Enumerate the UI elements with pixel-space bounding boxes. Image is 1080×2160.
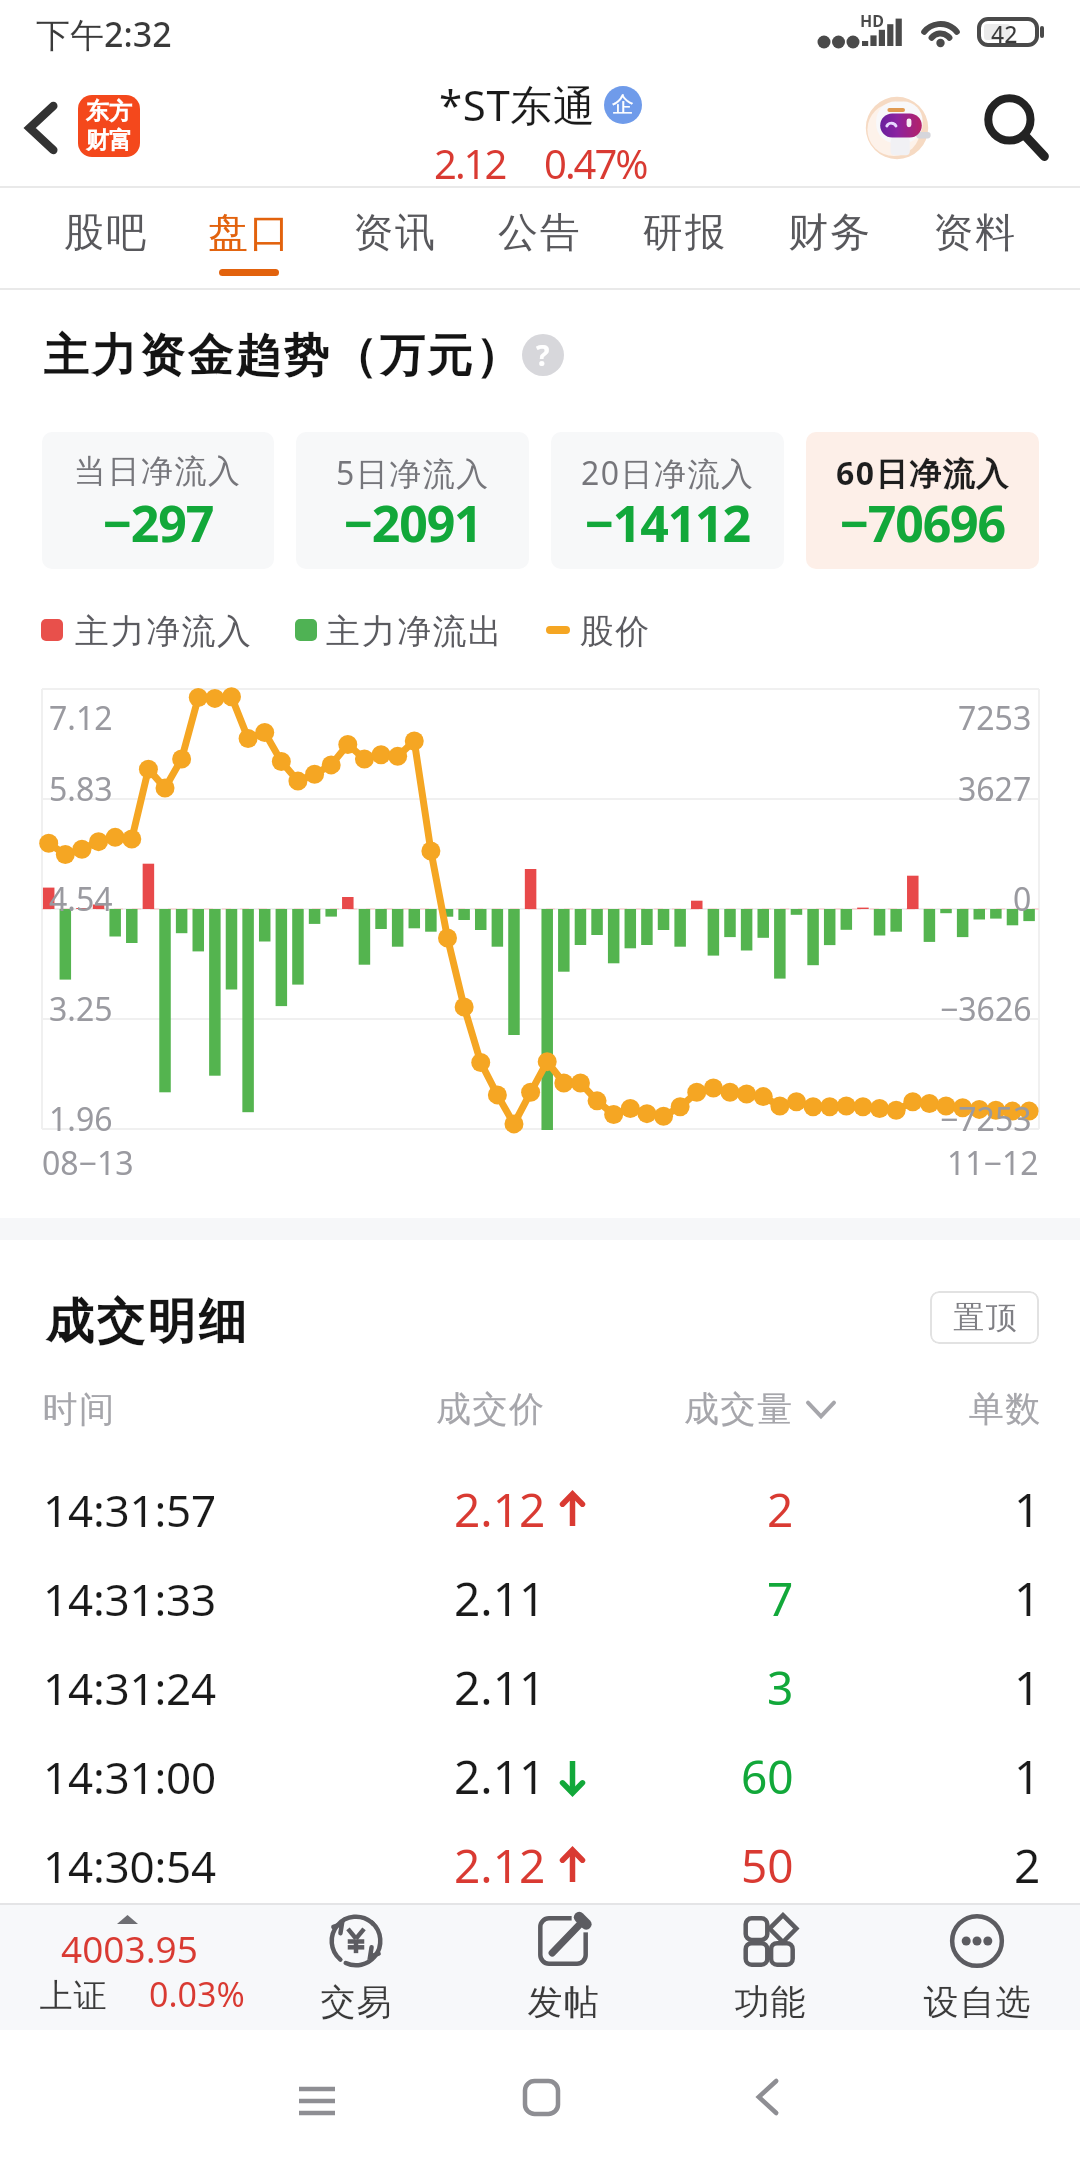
button[interactable]: 资料: [901, 188, 1046, 290]
staticText: 主力净流入: [75, 610, 253, 650]
staticText: 7.12: [49, 696, 113, 740]
staticText: 2.12: [434, 136, 506, 190]
staticText: 3627: [958, 767, 1032, 811]
staticText: 7253: [958, 696, 1032, 740]
button[interactable]: 盘口: [177, 188, 321, 290]
staticText: 14:31:00: [43, 1747, 216, 1807]
button[interactable]: Back: [0, 76, 82, 180]
staticText: 1: [1014, 1745, 1041, 1808]
staticText: 成交明细: [44, 1292, 248, 1352]
staticText: 单数: [968, 1387, 1041, 1431]
staticText: 4.54: [49, 877, 113, 921]
staticText: 盘口: [207, 207, 291, 257]
button[interactable]: 发帖: [459, 1905, 666, 2032]
staticText: 股吧: [63, 207, 147, 257]
staticText: 研报: [642, 207, 726, 257]
staticText: 20日净流入: [581, 451, 755, 495]
staticText: 公告: [497, 207, 581, 257]
button[interactable]: 研报: [611, 188, 756, 290]
staticText: 发帖: [527, 1980, 599, 2024]
staticText: 14:31:33: [43, 1569, 216, 1629]
staticText: 50: [741, 1834, 794, 1897]
button[interactable]: Search: [968, 80, 1064, 176]
staticText: −70696: [840, 489, 1005, 557]
button[interactable]: 14:31:24: [0, 1643, 1080, 1732]
staticText: −3626: [940, 987, 1032, 1031]
button[interactable]: 资讯: [321, 188, 466, 290]
staticText: 3.25: [49, 987, 113, 1031]
staticText: 企: [612, 91, 634, 119]
staticText: −297: [103, 489, 214, 557]
staticText: 1: [1014, 1656, 1041, 1719]
staticText: 设自选: [923, 1980, 1031, 2024]
button[interactable]: 交易: [252, 1905, 459, 2032]
button[interactable]: 4003.95: [0, 1905, 252, 2032]
button[interactable]: 14:31:00: [0, 1732, 1080, 1821]
staticText: 2: [767, 1478, 794, 1541]
staticText: 1: [1014, 1478, 1041, 1541]
staticText: ?: [536, 336, 550, 374]
staticText: 财务: [787, 207, 871, 257]
staticText: 14:31:57: [43, 1480, 216, 1540]
button[interactable]: Recent apps: [274, 2058, 360, 2144]
staticText: 14:30:54: [43, 1836, 216, 1896]
staticText: HD: [860, 10, 884, 32]
staticText: 主力净流出: [326, 610, 504, 650]
staticText: 2.12: [454, 1834, 546, 1897]
staticText: 0.47%: [544, 136, 647, 190]
staticText: 1.96: [49, 1097, 113, 1141]
staticText: 成交价: [436, 1387, 546, 1431]
staticText: 资讯: [352, 207, 436, 257]
staticText: 资料: [932, 207, 1016, 257]
button[interactable]: 14:30:54: [0, 1821, 1080, 1910]
staticText: 60: [741, 1745, 794, 1808]
staticText: 14:31:24: [43, 1658, 216, 1718]
button[interactable]: 60日净流入: [806, 432, 1039, 569]
staticText: 功能: [734, 1980, 806, 2024]
staticText: 42: [991, 18, 1018, 49]
button[interactable]: Back: [724, 2054, 810, 2140]
button[interactable]: 14:31:57: [0, 1465, 1080, 1554]
button[interactable]: 5日净流入: [296, 432, 529, 569]
staticText: *ST东通: [439, 76, 596, 133]
button[interactable]: AI assistant: [857, 88, 937, 168]
button[interactable]: 功能: [666, 1905, 873, 2032]
staticText: 2.12: [454, 1478, 546, 1541]
staticText: 11−12: [947, 1141, 1039, 1185]
staticText: 2.11: [454, 1745, 546, 1808]
button[interactable]: East Money home: [78, 95, 140, 157]
staticText: 4003.95: [61, 1923, 198, 1973]
staticText: −7253: [940, 1097, 1032, 1141]
staticText: 5日净流入: [336, 451, 490, 495]
staticText: 2: [1014, 1834, 1041, 1897]
staticText: 2.11: [454, 1567, 546, 1630]
button[interactable]: 置顶: [930, 1291, 1039, 1344]
button[interactable]: 财务: [756, 188, 901, 290]
staticText: −2091: [344, 489, 482, 557]
staticText: 3: [767, 1656, 794, 1719]
staticText: −14112: [585, 489, 750, 557]
button[interactable]: 20日净流入: [551, 432, 784, 569]
button[interactable]: Home: [498, 2054, 584, 2140]
button[interactable]: 14:31:33: [0, 1554, 1080, 1643]
staticText: 上证: [39, 1975, 107, 2017]
staticText: 5.83: [49, 767, 113, 811]
button[interactable]: 股吧: [33, 188, 177, 290]
staticText: 0: [1013, 877, 1032, 921]
staticText: 交易: [320, 1980, 392, 2024]
staticText: 下午2:32: [36, 11, 172, 57]
staticText: 0.03%: [149, 1971, 245, 2017]
staticText: 财富: [86, 126, 132, 155]
staticText: 时间: [42, 1387, 115, 1431]
staticText: 成交量: [684, 1387, 794, 1431]
button[interactable]: Help: [522, 334, 564, 376]
button[interactable]: 公告: [466, 188, 611, 290]
staticText: 08−13: [42, 1141, 134, 1185]
staticText: 主力资金趋势（万元）: [42, 328, 522, 385]
button[interactable]: 当日净流入: [42, 432, 274, 569]
staticText: 1: [1014, 1567, 1041, 1630]
staticText: 东方: [86, 97, 132, 126]
staticText: 2.11: [454, 1656, 546, 1719]
button[interactable]: 设自选: [873, 1905, 1080, 2032]
staticText: 7: [767, 1567, 794, 1630]
